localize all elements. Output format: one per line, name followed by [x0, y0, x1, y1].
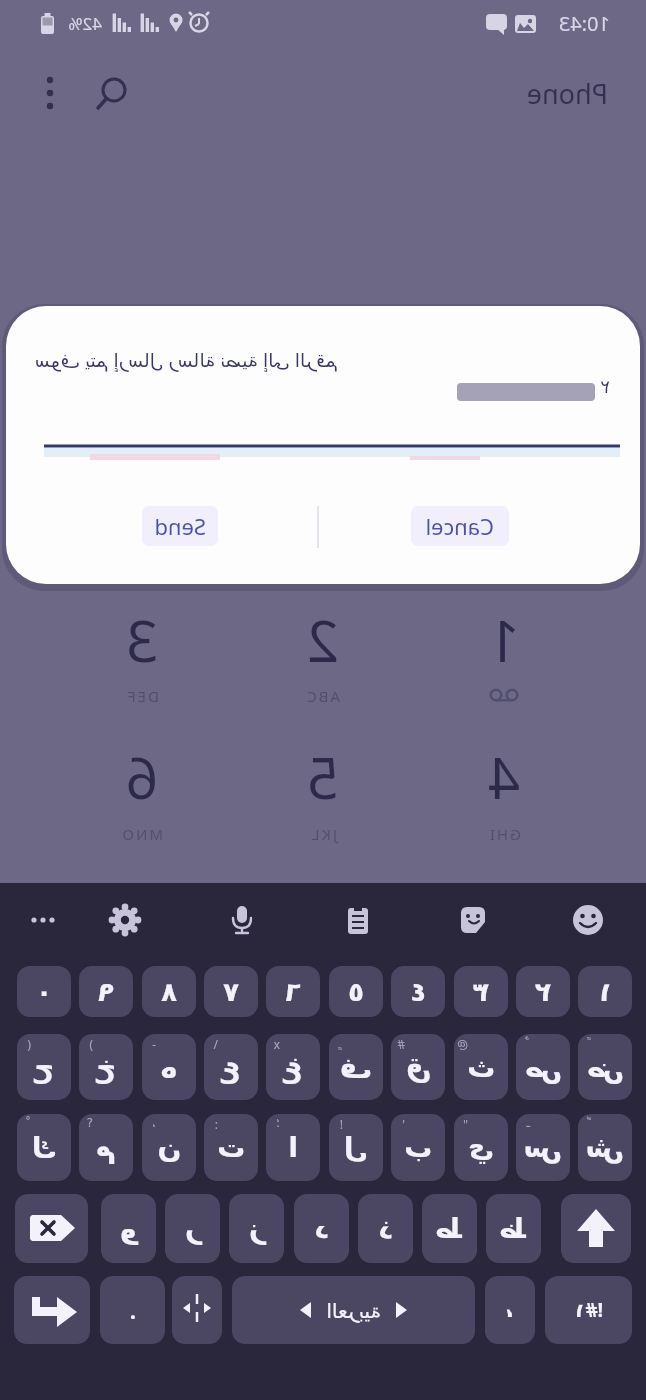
button[interactable]	[14, 1276, 90, 1344]
staticText: ح	[33, 1051, 54, 1084]
staticText: 4	[487, 739, 520, 803]
staticText: "	[463, 1116, 468, 1132]
staticText: -	[152, 1036, 156, 1052]
staticText: ٢	[600, 376, 610, 397]
staticText: ت	[216, 1131, 245, 1164]
staticText: ث	[466, 1051, 495, 1084]
button[interactable]: ظ	[486, 1194, 541, 1263]
button[interactable]: م	[79, 1114, 133, 1181]
button[interactable]: ٦	[266, 966, 320, 1017]
staticText: ق	[405, 1051, 431, 1084]
staticText: \	[213, 1036, 218, 1052]
button[interactable]: Cancel	[411, 506, 509, 546]
button[interactable]	[570, 902, 606, 938]
button[interactable]: ث	[454, 1034, 508, 1100]
staticText: 6	[125, 739, 158, 803]
button[interactable]: ت	[204, 1114, 258, 1181]
button[interactable]: ١	[578, 966, 632, 1017]
button[interactable]: ٧	[204, 966, 258, 1017]
button[interactable]: ٢	[516, 966, 570, 1017]
button[interactable]: 1	[444, 602, 564, 666]
staticText: 3	[125, 602, 158, 666]
staticText: ص	[524, 1051, 562, 1084]
button[interactable]	[15, 1194, 88, 1263]
button[interactable]: Send	[142, 506, 218, 546]
button[interactable]: ع	[204, 1034, 258, 1100]
staticText: ـ	[526, 1116, 530, 1130]
button[interactable]: ٩	[79, 966, 133, 1017]
button[interactable]: ش	[578, 1114, 632, 1181]
button[interactable]: ،	[485, 1276, 535, 1344]
staticText: JKL	[309, 824, 337, 844]
button[interactable]: 3	[82, 602, 202, 666]
button[interactable]: ح	[17, 1034, 71, 1100]
staticText: غ	[283, 1051, 303, 1084]
button[interactable]: 2	[263, 602, 383, 666]
button[interactable]: غ	[266, 1034, 320, 1100]
staticText: DEF	[125, 686, 159, 706]
staticText: ي	[468, 1131, 494, 1164]
button[interactable]: ب	[391, 1114, 445, 1181]
button[interactable]: ذ	[358, 1194, 413, 1263]
staticText: Cancel	[425, 511, 494, 541]
button[interactable]: ٤	[391, 966, 445, 1017]
button[interactable]: ف	[329, 1034, 383, 1100]
button[interactable]: 6	[82, 739, 202, 803]
button[interactable]: و	[101, 1194, 156, 1263]
button[interactable]: ك	[17, 1114, 71, 1181]
button[interactable]	[455, 902, 491, 938]
staticText: ك	[31, 1131, 57, 1164]
button[interactable]	[107, 902, 143, 938]
staticText: Phone	[526, 75, 608, 112]
button[interactable]	[25, 902, 61, 938]
staticText: #	[397, 1036, 405, 1052]
button[interactable]: ا	[266, 1114, 320, 1181]
button[interactable]: العربية	[232, 1276, 475, 1344]
staticText: ف	[339, 1051, 372, 1084]
button[interactable]: ٥	[329, 966, 383, 1017]
button[interactable]: ط	[422, 1194, 477, 1263]
button[interactable]	[172, 1276, 222, 1344]
staticText: ٠	[36, 977, 52, 1007]
button[interactable]: ٨	[142, 966, 196, 1017]
staticText: GHI	[487, 824, 521, 844]
staticText: 42%	[68, 12, 102, 35]
button[interactable]: !#١	[545, 1276, 632, 1344]
button[interactable]: ٠	[17, 966, 71, 1017]
staticText: ط	[434, 1212, 464, 1245]
staticText: @	[457, 1036, 468, 1052]
staticText: ع	[221, 1051, 241, 1084]
staticText: ش	[585, 1131, 624, 1164]
button[interactable]: ه	[142, 1034, 196, 1100]
staticText: ؟	[86, 1116, 93, 1130]
staticText: ٩	[98, 977, 114, 1007]
button[interactable]: خ	[79, 1034, 133, 1100]
button[interactable]: ٣	[454, 966, 508, 1017]
button[interactable]: ق	[391, 1034, 445, 1100]
staticText: سوف يتم إرسال رسالة نصية إلى الرقم	[34, 347, 338, 373]
staticText: (	[27, 1036, 31, 1052]
button[interactable]	[26, 68, 68, 118]
button[interactable]: ر	[165, 1194, 220, 1263]
button[interactable]: ز	[229, 1194, 284, 1263]
staticText: ه	[160, 1051, 177, 1084]
button[interactable]: ص	[516, 1034, 570, 1100]
button[interactable]	[340, 902, 376, 938]
staticText: ABC	[305, 686, 340, 706]
button[interactable]: 4	[444, 739, 564, 803]
button[interactable]	[561, 1194, 631, 1263]
staticText: خ	[95, 1051, 116, 1084]
button[interactable]: س	[516, 1114, 570, 1181]
button[interactable]: ض	[578, 1034, 632, 1100]
button[interactable]: .	[100, 1276, 165, 1344]
button[interactable]	[224, 902, 260, 938]
staticText: ظ	[498, 1212, 528, 1245]
button[interactable]: د	[294, 1194, 349, 1263]
staticText: 2	[306, 602, 339, 666]
staticText: 5	[306, 739, 339, 803]
button[interactable]: 5	[263, 739, 383, 803]
button[interactable]: ن	[142, 1114, 196, 1181]
button[interactable]: ي	[454, 1114, 508, 1181]
button[interactable]: ل	[329, 1114, 383, 1181]
button[interactable]	[88, 68, 138, 118]
